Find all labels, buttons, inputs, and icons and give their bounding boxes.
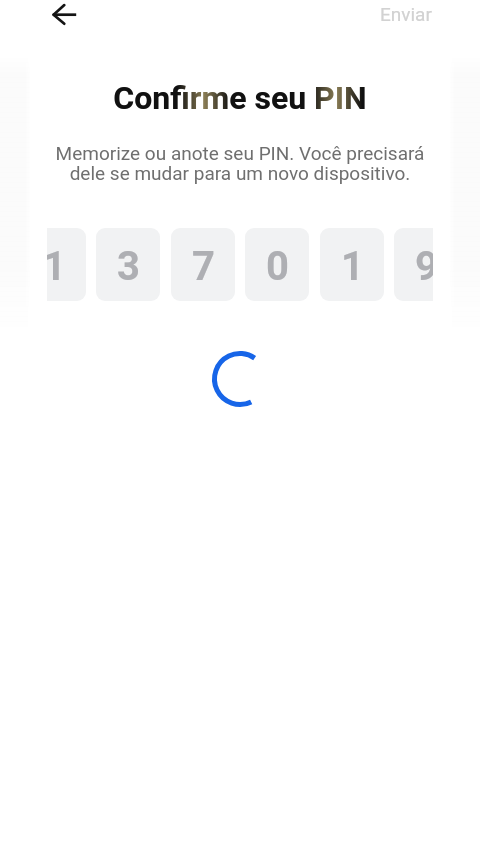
staticText: 3	[117, 243, 140, 290]
button[interactable]: Back	[40, 0, 88, 30]
staticText: Memorize ou anote seu PIN. Você precisar…	[50, 142, 430, 184]
button[interactable]: 7	[171, 228, 235, 301]
staticText: Enviar	[380, 3, 432, 25]
staticText: 0	[266, 243, 289, 290]
button[interactable]: 3	[96, 228, 160, 301]
button[interactable]: 0	[245, 228, 309, 301]
staticText: 1	[47, 243, 66, 290]
staticText: 7	[192, 243, 215, 290]
staticText: 9	[415, 243, 433, 290]
button[interactable]: 9	[394, 228, 433, 301]
other: Loading	[212, 351, 268, 407]
button[interactable]: Enviar	[368, 0, 444, 29]
staticText: Confirme seu PIN	[113, 79, 367, 117]
staticText: 1	[341, 243, 364, 290]
button[interactable]: 1	[320, 228, 384, 301]
button[interactable]: 1	[47, 228, 86, 301]
